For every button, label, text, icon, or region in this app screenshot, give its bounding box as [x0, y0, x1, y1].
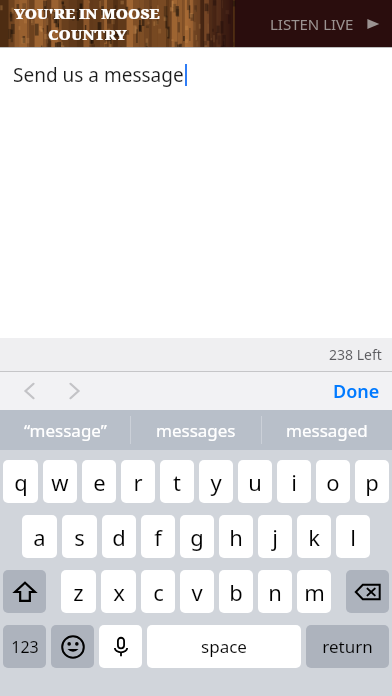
staticText: a	[33, 522, 46, 552]
button[interactable]: y	[199, 460, 233, 503]
staticText: m	[304, 577, 325, 607]
button[interactable]: a	[22, 515, 57, 558]
button[interactable]: LISTEN LIVE	[270, 14, 380, 34]
button[interactable]: k	[297, 515, 331, 558]
button[interactable]: Next field	[58, 375, 90, 407]
staticText: s	[74, 522, 85, 552]
staticText: messages	[156, 419, 236, 442]
button[interactable]: o	[316, 460, 350, 503]
staticText: n	[268, 577, 282, 607]
staticText: Send us a message	[13, 62, 184, 88]
button[interactable]: q	[3, 460, 38, 503]
staticText: h	[229, 522, 243, 552]
button[interactable]: n	[258, 570, 292, 613]
staticText: e	[93, 467, 106, 497]
staticText: g	[190, 522, 204, 552]
staticText: z	[73, 577, 84, 607]
button[interactable]: j	[258, 515, 292, 558]
other: Play live stream	[366, 17, 380, 31]
button[interactable]: x	[101, 570, 136, 613]
button[interactable]: t	[160, 460, 194, 503]
staticText: 123	[11, 636, 39, 658]
staticText: messaged	[286, 419, 368, 442]
staticText: q	[14, 467, 28, 497]
staticText: f	[154, 522, 162, 552]
button[interactable]: Emoji	[51, 625, 94, 668]
staticText: Done	[333, 379, 380, 404]
button[interactable]: r	[121, 460, 155, 503]
staticText: LISTEN LIVE	[270, 14, 354, 34]
staticText: k	[308, 522, 320, 552]
button[interactable]: 123	[3, 625, 46, 668]
staticText: l	[350, 522, 356, 552]
staticText: “message”	[24, 419, 107, 442]
button[interactable]: Send us a message	[0, 48, 392, 338]
staticText: u	[248, 467, 262, 497]
button[interactable]: e	[82, 460, 116, 503]
staticText: c	[153, 577, 164, 607]
button[interactable]: m	[297, 570, 331, 613]
button[interactable]: z	[61, 570, 96, 613]
button[interactable]: “message”	[0, 410, 130, 450]
button[interactable]: messaged	[262, 410, 392, 450]
button[interactable]: YOU'RE IN MOOSE	[0, 0, 392, 47]
button[interactable]: h	[219, 515, 253, 558]
button[interactable]: c	[141, 570, 175, 613]
staticText: return	[322, 635, 373, 658]
staticText: b	[229, 577, 243, 607]
button[interactable]: messages	[131, 410, 261, 450]
button[interactable]: b	[219, 570, 253, 613]
staticText: COUNTRY	[48, 24, 127, 44]
button[interactable]: l	[336, 515, 370, 558]
button[interactable]: p	[355, 460, 389, 503]
button[interactable]: space	[147, 625, 301, 668]
button[interactable]: i	[277, 460, 311, 503]
staticText: v	[191, 577, 203, 607]
staticText: w	[51, 467, 69, 497]
button[interactable]: Backspace	[346, 570, 389, 613]
staticText: y	[210, 467, 222, 497]
button[interactable]: return	[306, 625, 389, 668]
staticText: t	[173, 467, 181, 497]
button[interactable]: Done	[321, 372, 392, 410]
staticText: j	[272, 522, 278, 552]
staticText: d	[112, 522, 126, 552]
button[interactable]: d	[102, 515, 136, 558]
staticText: o	[326, 467, 340, 497]
staticText: i	[291, 467, 297, 497]
button[interactable]: Shift	[3, 570, 46, 613]
button[interactable]: g	[180, 515, 214, 558]
staticText: YOU'RE IN MOOSE	[14, 3, 160, 23]
staticText: x	[113, 577, 125, 607]
button[interactable]: s	[62, 515, 97, 558]
button[interactable]: f	[141, 515, 175, 558]
button[interactable]: Dictate	[99, 625, 142, 668]
button[interactable]: w	[43, 460, 77, 503]
staticText: space	[201, 635, 247, 658]
staticText: 238 Left	[329, 345, 382, 364]
staticText: p	[365, 467, 379, 497]
button[interactable]: v	[180, 570, 214, 613]
button[interactable]: Previous field	[14, 375, 46, 407]
button[interactable]: u	[238, 460, 272, 503]
staticText: r	[133, 467, 143, 497]
